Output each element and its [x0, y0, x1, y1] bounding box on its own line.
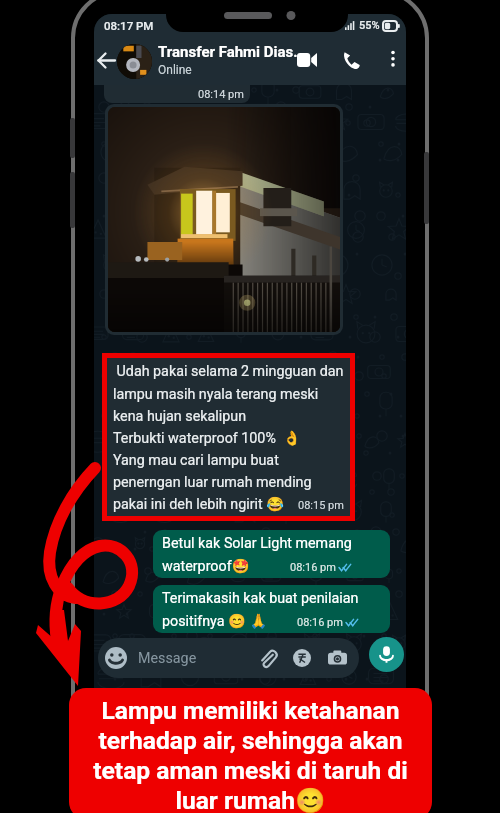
- button[interactable]: Photo: [108, 107, 340, 332]
- button[interactable]: Message: [98, 638, 359, 678]
- button[interactable]: Call: [337, 46, 365, 74]
- staticText: Transfer Fahmi Dias..: [158, 43, 302, 61]
- staticText: Lampu memiliki ketahanan terhadap air, s…: [93, 696, 408, 813]
- other: Camera: [328, 649, 347, 668]
- staticText: Terimakasih kak buat penilaian positifny…: [162, 590, 359, 629]
- staticText: Betul kak Solar Light memang waterproof🤩: [162, 535, 352, 574]
- staticText: 08:17 PM: [104, 19, 154, 32]
- staticText: 08:15 pm: [298, 499, 344, 512]
- button[interactable]: Video call: [294, 47, 320, 73]
- button[interactable]: More options: [381, 47, 405, 71]
- other: Attach: [258, 649, 277, 668]
- staticText: Message: [138, 650, 197, 667]
- button[interactable]: Back: [94, 47, 119, 73]
- staticText: Online: [158, 63, 192, 77]
- button[interactable]: Betul kak Solar Light memang waterproof🤩: [153, 530, 390, 578]
- staticText: Udah pakai selama 2 mingguan dan lampu m…: [113, 363, 344, 512]
- button[interactable]: Lampu memiliki ketahanan terhadap air, s…: [69, 688, 432, 813]
- staticText: Puas bgt kak: [113, 58, 196, 75]
- button[interactable]: Terimakasih kak buat penilaian positifny…: [153, 585, 390, 633]
- staticText: 08:16 pm: [290, 561, 336, 574]
- button[interactable]: Profile photo: [117, 44, 152, 79]
- staticText: 08:16 pm: [297, 616, 343, 629]
- other: Payment: [293, 649, 311, 667]
- button[interactable]: Udah pakai selama 2 mingguan dan lampu m…: [107, 358, 350, 516]
- staticText: 55%: [359, 19, 380, 32]
- staticText: 08:14 pm: [198, 88, 244, 101]
- button[interactable]: Voice message: [369, 637, 404, 672]
